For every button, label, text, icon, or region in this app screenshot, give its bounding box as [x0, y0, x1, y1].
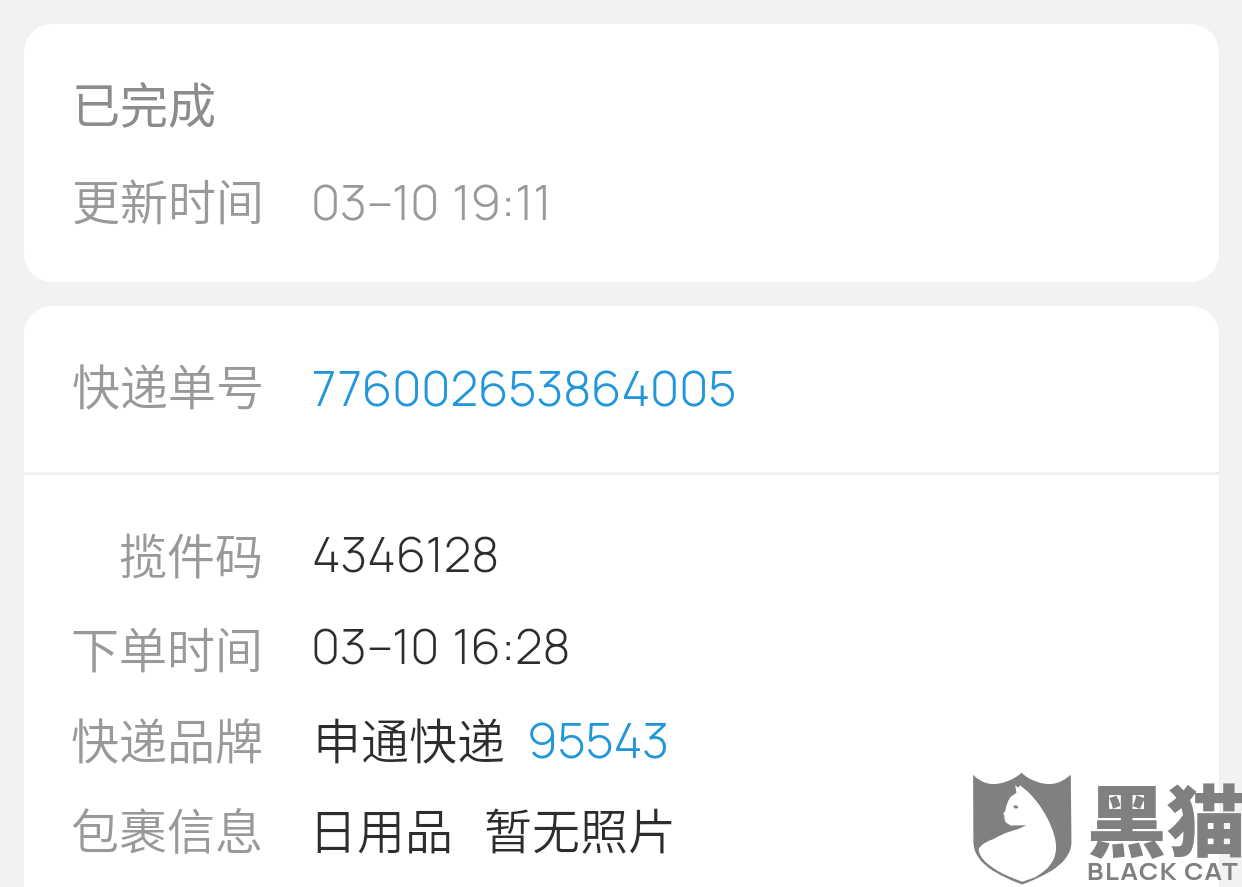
staticText: 03–10 19:11 — [311, 168, 552, 235]
button[interactable]: 已完成 — [24, 24, 1219, 282]
button[interactable]: 揽件码 — [24, 507, 1219, 599]
staticText: 03–10 16:28 — [311, 612, 571, 679]
staticText: 申通快递 — [313, 703, 506, 773]
button[interactable]: 快递单号 — [24, 306, 1219, 473]
staticText: BLACK CAT — [1087, 855, 1240, 886]
staticText: 已完成 — [72, 67, 217, 137]
staticText: 776002653864005 — [312, 354, 737, 421]
staticText: 4346128 — [312, 520, 500, 587]
button[interactable]: 包裹信息 — [24, 782, 1219, 874]
button[interactable]: 快递品牌 — [24, 692, 1219, 784]
button[interactable]: 95543 — [527, 706, 669, 773]
staticText: 暂无照片 — [484, 793, 677, 863]
other: Black Cat consumer-service watermark — [967, 770, 1079, 887]
staticText: 下单时间 — [70, 612, 263, 682]
staticText: 快递品牌 — [70, 703, 263, 773]
staticText: 更新时间 — [72, 164, 265, 234]
staticText: 揽件码 — [118, 518, 263, 588]
button[interactable]: 下单时间 — [24, 601, 1219, 693]
staticText: 包裹信息 — [70, 793, 263, 863]
staticText: 日用品 — [309, 793, 454, 863]
staticText: 黑猫 — [1087, 761, 1242, 874]
staticText: 快递单号 — [72, 349, 265, 419]
